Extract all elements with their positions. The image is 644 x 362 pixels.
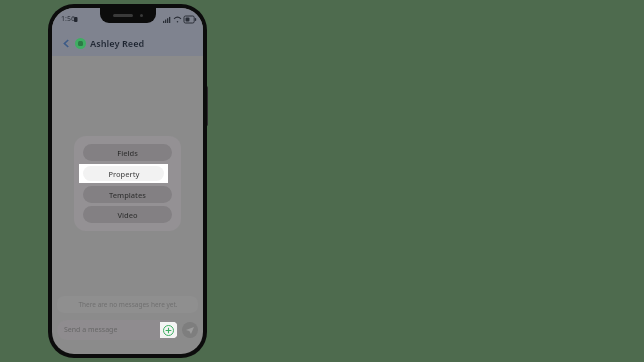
button[interactable]: Send a message [57, 320, 179, 340]
button[interactable]: Add attachment [160, 322, 177, 338]
staticText: Property [108, 169, 140, 179]
staticText: Video [117, 210, 138, 220]
staticText: Ashley Reed [90, 37, 145, 49]
button[interactable]: Templates [83, 186, 172, 203]
button[interactable]: Property [83, 166, 164, 181]
staticText: Send a message [64, 325, 160, 335]
staticText: 1:56 [61, 14, 75, 24]
staticText: There are no messages here yet. [78, 300, 178, 309]
staticText: Templates [109, 190, 146, 200]
button[interactable]: Fields [83, 144, 172, 161]
staticText: Fields [117, 148, 138, 158]
button[interactable]: Back [59, 36, 73, 50]
button[interactable]: Video [83, 206, 172, 223]
button[interactable]: Send [182, 322, 198, 338]
